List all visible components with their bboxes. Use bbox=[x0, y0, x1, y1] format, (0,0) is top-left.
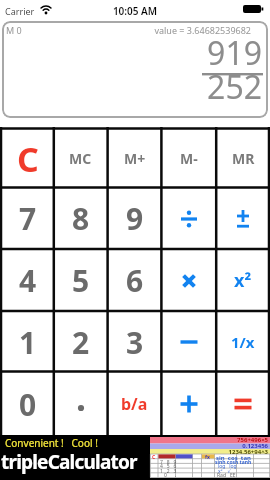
button[interactable] bbox=[55, 373, 106, 435]
staticText: 1234.56+94^3 bbox=[150, 448, 268, 456]
staticText: 7 8 9 bbox=[160, 459, 177, 466]
staticText: b/a bbox=[121, 393, 148, 415]
staticText: M+ bbox=[124, 149, 146, 168]
staticText: Carrier bbox=[5, 5, 35, 17]
button[interactable]: C bbox=[2, 130, 53, 187]
staticText: 7 bbox=[19, 198, 37, 239]
staticText: sin cos tan bbox=[216, 454, 251, 462]
staticText: 1 bbox=[19, 322, 37, 363]
staticText: MC bbox=[69, 149, 92, 168]
button[interactable]: 1 bbox=[2, 313, 53, 371]
staticText: value = 3.64682539682 bbox=[2, 24, 251, 36]
button[interactable] bbox=[163, 373, 215, 435]
button[interactable]: 4 bbox=[2, 251, 53, 310]
staticText: sinh cosh tanh bbox=[215, 459, 252, 466]
button[interactable]: Convenient ! Cool ! bbox=[0, 435, 270, 480]
staticText: log log bbox=[218, 463, 237, 470]
button[interactable]: 2 bbox=[55, 313, 106, 371]
staticText: 4 bbox=[19, 260, 37, 301]
button[interactable]: MC bbox=[55, 130, 106, 187]
button[interactable]: 1/x bbox=[218, 313, 268, 371]
staticText: 4 5 6 bbox=[160, 463, 177, 470]
staticText: C bbox=[152, 454, 156, 461]
staticText: MR bbox=[232, 149, 255, 168]
button[interactable] bbox=[218, 189, 268, 248]
staticText: tripleCalculator bbox=[1, 449, 137, 475]
staticText: 0 bbox=[19, 384, 37, 425]
staticText: Rad EE bbox=[217, 472, 236, 479]
button[interactable]: 3 bbox=[109, 313, 160, 371]
staticText: 1/x bbox=[231, 332, 255, 352]
staticText: 2 bbox=[72, 322, 90, 363]
button[interactable] bbox=[163, 189, 215, 248]
button[interactable] bbox=[218, 373, 268, 435]
staticText: 252 bbox=[2, 65, 262, 109]
staticText: 5 bbox=[72, 260, 90, 301]
button[interactable]: 5 bbox=[55, 251, 106, 310]
staticText: M 0 bbox=[6, 24, 22, 36]
button[interactable]: b/a bbox=[109, 373, 160, 435]
staticText: 919 bbox=[2, 31, 262, 75]
staticText: 10:05 AM bbox=[0, 4, 270, 18]
staticText: 6 bbox=[126, 260, 144, 301]
button[interactable]: MR bbox=[218, 130, 268, 187]
button[interactable]: 8 bbox=[55, 189, 106, 248]
button[interactable]: M+ bbox=[109, 130, 160, 187]
button[interactable]: 6 bbox=[109, 251, 160, 310]
button[interactable]: M- bbox=[163, 130, 215, 187]
staticText: 1 2 3 bbox=[160, 468, 177, 475]
staticText: Convenient ! Cool ! bbox=[5, 436, 98, 450]
button[interactable]: x² bbox=[218, 251, 268, 310]
staticText: fx bbox=[205, 454, 210, 461]
button[interactable] bbox=[163, 313, 215, 371]
staticText: 8 bbox=[72, 198, 90, 239]
staticText: x² bbox=[234, 268, 252, 293]
staticText: 0.123456 bbox=[150, 442, 268, 450]
staticText: C bbox=[17, 136, 39, 182]
staticText: x² √ bbox=[218, 468, 231, 475]
button[interactable]: 0 bbox=[2, 373, 53, 435]
staticText: 3 bbox=[126, 322, 144, 363]
staticText: 9 bbox=[126, 198, 144, 239]
staticText: 756+496×5 bbox=[150, 436, 268, 444]
button[interactable]: 9 bbox=[109, 189, 160, 248]
staticText: 0 . bbox=[164, 472, 177, 479]
button[interactable]: 7 bbox=[2, 189, 53, 248]
button[interactable] bbox=[163, 251, 215, 310]
staticText: M- bbox=[180, 149, 198, 168]
